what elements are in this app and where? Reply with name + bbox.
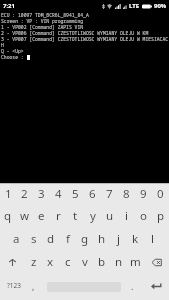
button[interactable]: t [67,206,84,228]
staticText: l [151,231,154,247]
button[interactable]: s [25,228,42,251]
button[interactable]: o [135,206,152,228]
button[interactable]: 1 [0,184,16,206]
button[interactable]: r [50,206,67,228]
button[interactable]: q [0,206,16,228]
staticText: h [98,231,106,247]
button[interactable]: z [25,251,42,274]
button[interactable]: w [16,206,33,228]
staticText: e [38,208,45,224]
button[interactable]: 0 [152,184,169,206]
staticText: w [20,208,30,224]
staticText: 2 - VP006 [Command] CZESTOTLIWOSC WYMIAN… [1,30,149,36]
button[interactable]: Backspace [144,251,169,274]
staticText: LTE [129,2,140,10]
staticText: 1 - VP002 [Command] ZAPIS VIN [1,24,84,30]
button[interactable]: a [8,228,25,251]
button[interactable]: e [33,206,50,228]
staticText: y [90,208,96,224]
button[interactable]: l [144,228,161,251]
staticText: 90% [154,2,167,10]
staticText: z [31,254,37,270]
button[interactable]: 8 [118,184,135,206]
button[interactable]: Shift [0,251,25,274]
staticText: f [66,231,70,247]
staticText: 5 [72,186,79,202]
staticText: i [125,208,128,224]
button[interactable]: 2 [16,184,33,206]
staticText: 7 [106,186,113,202]
staticText: n [115,254,123,270]
staticText: b [98,254,106,270]
button[interactable]: f [59,228,76,251]
button[interactable]: g [76,228,93,251]
staticText: , [32,280,35,292]
staticText: 9 [140,186,147,202]
staticText: 3 [38,186,45,202]
button[interactable]: 6 [84,184,101,206]
button[interactable]: 7 [101,184,118,206]
button[interactable]: 9 [135,184,152,206]
button[interactable]: n [110,251,127,274]
staticText: ECU : 10097 TDM_BCR6L_8941_84_A [1,12,89,18]
staticText: j [117,231,120,247]
staticText: d [47,231,55,247]
button[interactable]: u [101,206,118,228]
staticText: 7:21 [3,2,15,10]
staticText: u [106,208,114,224]
button[interactable]: h [93,228,110,251]
button[interactable]: . [121,274,143,297]
button[interactable]: , [20,274,47,297]
staticText: a [13,231,20,247]
staticText: x [47,254,54,270]
button[interactable]: 5 [67,184,84,206]
button[interactable]: 3 [33,184,50,206]
staticText: p [157,208,165,224]
button[interactable]: k [127,228,144,251]
staticText: 1 [5,186,12,202]
staticText: o [140,208,147,224]
staticText: 0 [157,186,164,202]
staticText: 2 [21,186,28,202]
button[interactable]: i [118,206,135,228]
staticText: 4 [55,186,62,202]
staticText: Choose : [1,54,27,60]
staticText: r [56,208,61,224]
button[interactable]: d [42,228,59,251]
staticText: m [130,254,141,270]
button[interactable]: ?123 [0,274,20,297]
staticText: c [65,254,71,270]
staticText: g [81,231,89,247]
button[interactable]: Enter [143,274,169,297]
button[interactable]: v [76,251,93,274]
staticText: v [82,254,88,270]
staticText: t [73,208,78,224]
button[interactable]: x [42,251,59,274]
staticText: q [4,208,12,224]
staticText: k [132,231,139,247]
staticText: Q - <Up> [1,48,24,54]
staticText: 3 - VP007 [Command] CZESTOTLIWOSC WYMIAN… [1,36,169,42]
staticText: s [31,231,37,247]
button[interactable]: c [59,251,76,274]
staticText: Screen : VP : VIN programming [1,18,84,24]
button[interactable]: b [93,251,110,274]
button[interactable]: m [127,251,144,274]
staticText: 6 [89,186,96,202]
staticText: H [1,42,4,48]
button[interactable]: y [84,206,101,228]
staticText: ?123 [7,281,21,290]
button[interactable]: j [110,228,127,251]
staticText: 8 [123,186,130,202]
staticText: . [131,280,134,292]
button[interactable]: p [152,206,169,228]
button[interactable]: 4 [50,184,67,206]
